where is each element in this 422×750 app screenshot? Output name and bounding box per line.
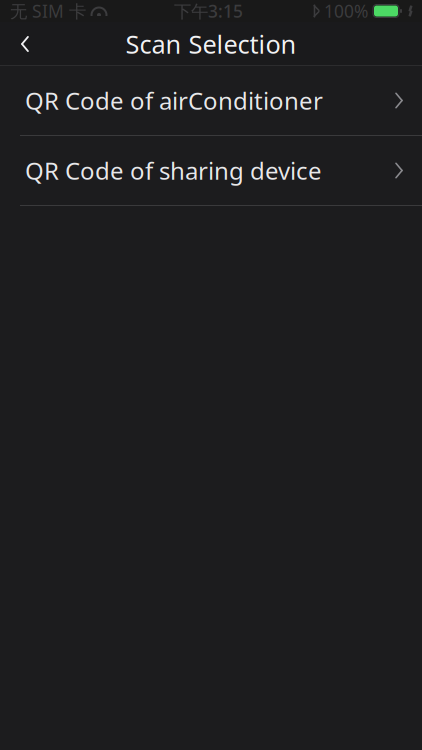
staticText: Scan Selection [125, 27, 296, 61]
button[interactable]: QR Code of airConditioner [0, 66, 422, 135]
staticText: 下午3:15 [174, 0, 243, 22]
button[interactable]: Back [0, 22, 50, 66]
staticText: 无 SIM 卡 [10, 0, 86, 22]
staticText: QR Code of airConditioner [25, 85, 323, 116]
staticText: 100% [324, 0, 368, 22]
button[interactable]: QR Code of sharing device [0, 136, 422, 205]
staticText: QR Code of sharing device [25, 155, 322, 186]
